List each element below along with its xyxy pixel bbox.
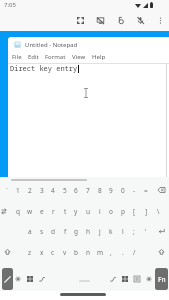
button[interactable]: Shift — [0, 243, 17, 261]
staticText: File — [12, 53, 22, 61]
button[interactable]: ; — [128, 222, 140, 240]
staticText: / — [133, 248, 136, 257]
button[interactable]: 1 — [12, 181, 24, 199]
staticText: - — [133, 186, 136, 195]
button[interactable]: Control right — [143, 268, 155, 290]
button[interactable]: , — [105, 243, 117, 261]
button[interactable]: 4 — [47, 181, 59, 199]
button[interactable]: l — [117, 222, 129, 240]
button[interactable]: m — [94, 243, 106, 261]
button[interactable]: More options — [151, 11, 169, 29]
button[interactable]: v — [59, 243, 71, 261]
staticText: ' — [145, 227, 147, 236]
staticText: c — [51, 248, 55, 257]
button[interactable]: Format — [42, 51, 69, 62]
button[interactable]: f — [59, 222, 71, 240]
button[interactable]: = — [140, 181, 152, 199]
staticText: n — [86, 248, 91, 257]
button[interactable]: r — [47, 202, 59, 220]
button[interactable]: 2 — [24, 181, 36, 199]
button[interactable]: b — [70, 243, 82, 261]
button[interactable]: 8 — [94, 181, 106, 199]
button[interactable]: Alt — [36, 268, 48, 290]
button[interactable]: Windows right — [119, 268, 131, 290]
button[interactable]: e — [36, 202, 48, 220]
button[interactable]: 0 — [117, 181, 129, 199]
button[interactable]: z — [24, 243, 36, 261]
button[interactable]: Shift right — [152, 243, 169, 261]
button[interactable]: k — [105, 222, 117, 240]
staticText: 8 — [98, 186, 102, 195]
button[interactable]: ` — [1, 181, 13, 199]
staticText: 7 — [86, 186, 90, 195]
button[interactable]: - — [128, 181, 140, 199]
button[interactable]: i — [94, 202, 106, 220]
button[interactable]: Tab — [0, 202, 11, 220]
button[interactable]: 5 — [59, 181, 71, 199]
button[interactable]: Fullscreen — [71, 11, 89, 29]
staticText: Fn — [158, 275, 166, 284]
button[interactable]: Help — [89, 51, 109, 62]
button[interactable]: w — [24, 202, 36, 220]
button[interactable]: h — [82, 222, 94, 240]
staticText: l — [122, 227, 124, 236]
button[interactable]: 7 — [82, 181, 94, 199]
button[interactable]: Stylus mode — [2, 268, 13, 290]
button[interactable]: j — [94, 222, 106, 240]
button[interactable]: o — [105, 202, 117, 220]
button[interactable]: File — [9, 51, 25, 62]
button[interactable]: ] — [140, 202, 152, 220]
button[interactable]: . — [117, 243, 129, 261]
button[interactable]: n — [82, 243, 94, 261]
button[interactable]: Space — [50, 268, 110, 290]
button[interactable]: Windows — [24, 268, 36, 290]
button[interactable]: q — [12, 202, 24, 220]
staticText: r — [52, 207, 55, 216]
button[interactable]: s — [36, 222, 48, 240]
staticText: [ — [133, 207, 136, 216]
button[interactable]: c — [47, 243, 59, 261]
staticText: h — [86, 227, 91, 236]
button[interactable]: Control — [12, 268, 24, 290]
staticText: 4 — [51, 186, 55, 195]
button[interactable]: x — [36, 243, 48, 261]
button[interactable]: / — [128, 243, 140, 261]
staticText: p — [121, 207, 125, 216]
button[interactable]: View — [69, 51, 89, 62]
staticText: ` — [6, 186, 8, 195]
button[interactable]: Mute microphone — [131, 11, 149, 29]
staticText: d — [51, 227, 55, 236]
staticText: Edit — [28, 53, 39, 61]
button[interactable]: Fn — [155, 268, 168, 290]
staticText: z — [28, 248, 32, 257]
button[interactable]: Edit — [25, 51, 42, 62]
button[interactable]: p — [117, 202, 129, 220]
staticText: i — [99, 207, 101, 216]
button[interactable]: 9 — [105, 181, 117, 199]
staticText: ] — [145, 207, 148, 216]
button[interactable]: d — [47, 222, 59, 240]
button[interactable]: g — [70, 222, 82, 240]
button[interactable]: 6 — [70, 181, 82, 199]
staticText: 1 — [16, 186, 20, 195]
button[interactable]: Toggle remote screen — [91, 11, 109, 29]
button[interactable]: \ — [152, 202, 164, 220]
button[interactable]: 3 — [36, 181, 48, 199]
button[interactable]: Alt right — [107, 268, 119, 290]
button[interactable]: [ — [128, 202, 140, 220]
staticText: Direct key entry — [10, 64, 78, 74]
button[interactable]: y — [70, 202, 82, 220]
staticText: a — [28, 227, 32, 236]
button[interactable]: Mouse mode — [111, 11, 129, 29]
button[interactable]: Menu — [131, 268, 143, 290]
staticText: y — [74, 207, 78, 216]
staticText: View — [72, 53, 86, 61]
button[interactable]: Enter — [152, 222, 169, 240]
staticText: e — [40, 207, 44, 216]
button[interactable]: u — [82, 202, 94, 220]
button[interactable]: t — [59, 202, 71, 220]
staticText: 5 — [63, 186, 67, 195]
button[interactable]: Backspace — [152, 181, 169, 199]
button[interactable]: a — [24, 222, 36, 240]
button[interactable]: ' — [140, 222, 152, 240]
